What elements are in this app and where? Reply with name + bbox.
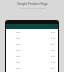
button[interactable]: Item	[6, 59, 58, 65]
staticText: Item	[16, 67, 21, 70]
staticText: Item	[16, 37, 21, 40]
staticText: Item	[16, 43, 21, 46]
staticText: Item	[16, 55, 21, 58]
staticText: 0.00	[51, 37, 55, 40]
staticText: 0.00	[51, 55, 55, 58]
button[interactable]: Item	[6, 29, 58, 35]
button[interactable]: Item	[6, 41, 58, 47]
staticText: Item	[16, 31, 21, 34]
button[interactable]: Item	[6, 47, 58, 53]
button[interactable]: Item	[6, 65, 58, 71]
button[interactable]: Item	[6, 35, 58, 41]
staticText: 0.00	[51, 67, 55, 70]
staticText: 0.00	[51, 49, 55, 52]
staticText: 0.00	[51, 61, 55, 64]
staticText: a small demo of a list layout	[19, 7, 46, 10]
staticText: 0.00	[51, 31, 55, 34]
staticText: Item	[16, 49, 21, 52]
staticText: Item	[16, 61, 21, 64]
staticText: Simple Product Page	[17, 2, 48, 6]
staticText: 0.00	[51, 43, 55, 46]
button[interactable]: Item	[6, 53, 58, 59]
